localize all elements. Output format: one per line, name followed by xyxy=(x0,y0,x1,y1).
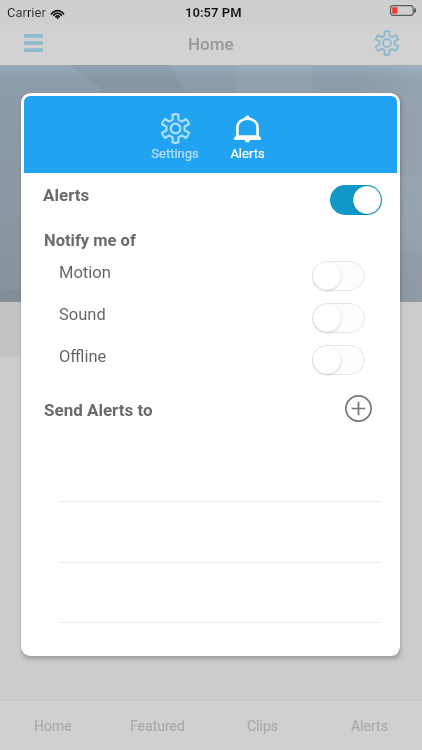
button[interactable]: Add recipient xyxy=(344,394,372,422)
staticText: Alerts xyxy=(230,146,265,161)
button[interactable]: Clips xyxy=(210,701,316,750)
staticText: Alerts xyxy=(351,718,388,734)
button[interactable]: Off xyxy=(312,303,365,333)
button[interactable]: Off xyxy=(312,261,365,291)
button[interactable]: Alerts xyxy=(316,701,422,750)
staticText: Sound xyxy=(59,305,106,324)
button[interactable]: Sound xyxy=(21,295,400,337)
staticText: Notify me of xyxy=(44,231,136,250)
staticText: 10:57 PM xyxy=(185,5,242,20)
button[interactable]: Off xyxy=(312,345,365,375)
staticText: Send Alerts to xyxy=(44,400,153,420)
button[interactable]: Featured xyxy=(105,701,210,750)
button[interactable]: Menu xyxy=(9,23,57,63)
staticText: Featured xyxy=(130,718,185,734)
staticText: Alerts xyxy=(43,185,90,205)
button[interactable]: Alerts on xyxy=(330,185,382,215)
staticText: Offline xyxy=(59,347,107,366)
staticText: Motion xyxy=(59,263,111,282)
button[interactable]: Home xyxy=(0,701,105,750)
button[interactable]: Offline xyxy=(21,337,400,379)
button[interactable] xyxy=(21,622,400,656)
button[interactable]: Motion xyxy=(21,253,400,295)
staticText: Settings xyxy=(151,146,199,161)
button[interactable]: Alerts xyxy=(212,96,282,173)
staticText: Clips xyxy=(247,718,279,734)
staticText: Carrier xyxy=(7,5,46,20)
button[interactable]: Settings xyxy=(140,96,210,173)
button[interactable]: Alerts xyxy=(21,172,400,218)
staticText: Home xyxy=(34,718,72,734)
button[interactable]: Settings xyxy=(364,23,410,63)
staticText: Home xyxy=(188,34,234,54)
